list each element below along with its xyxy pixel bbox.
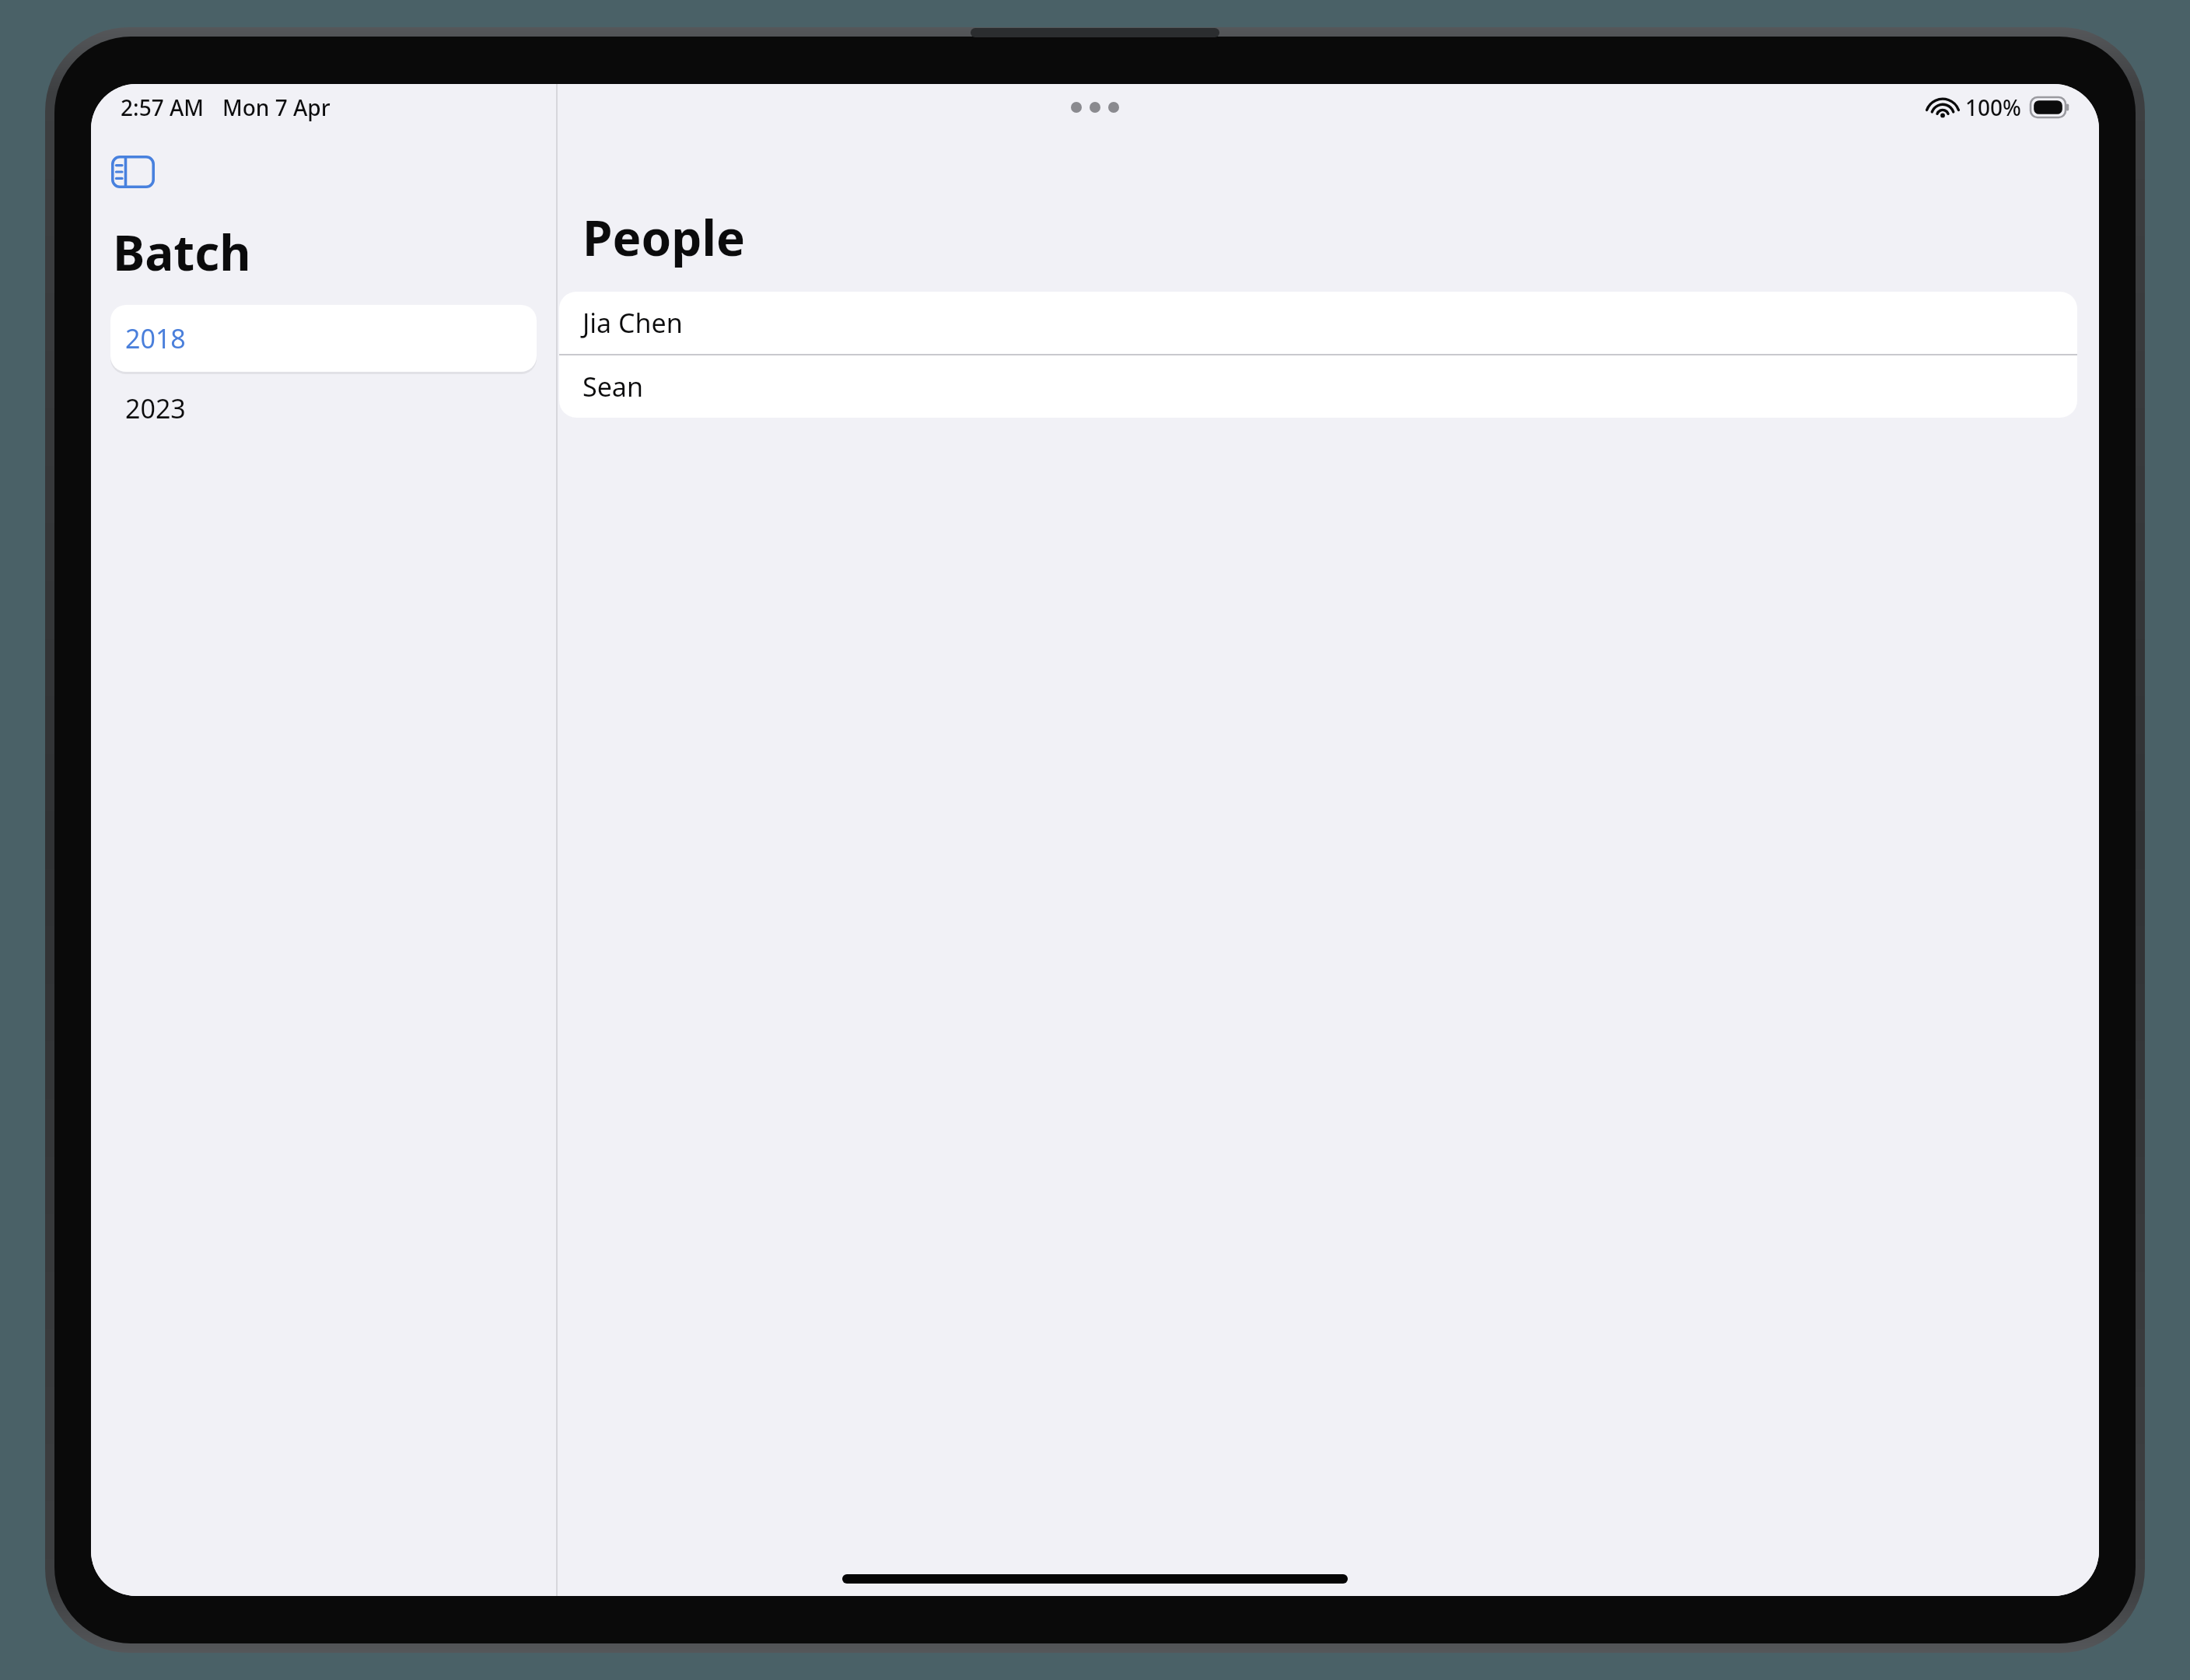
staticText: Mon 7 Apr <box>222 93 331 122</box>
staticText: 2023 <box>125 390 186 426</box>
staticText: Sean <box>582 369 643 404</box>
button[interactable]: 2018 <box>110 305 537 372</box>
button[interactable]: Sean <box>559 355 2077 418</box>
staticText: Batch <box>113 219 251 285</box>
staticText: People <box>582 205 745 270</box>
staticText: 100% <box>1965 93 2021 122</box>
staticText: 2:57 AM <box>121 93 204 122</box>
button[interactable]: Jia Chen <box>559 292 2077 354</box>
button[interactable]: Toggle sidebar <box>111 145 178 199</box>
staticText: Jia Chen <box>582 305 683 341</box>
button[interactable]: 2023 <box>110 375 537 442</box>
staticText: 2018 <box>125 320 186 356</box>
